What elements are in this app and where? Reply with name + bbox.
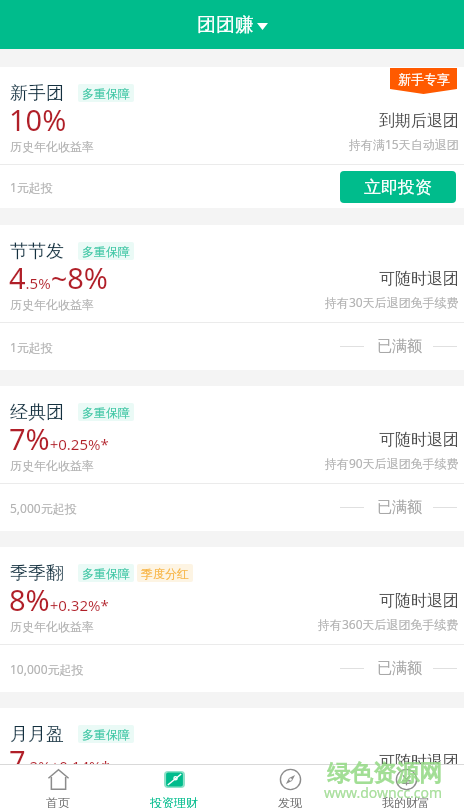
button[interactable]: 月月盈 xyxy=(0,708,464,764)
other: 投资理财 xyxy=(164,769,185,790)
staticText: 季季翻 xyxy=(10,562,64,585)
staticText: 已满额 xyxy=(377,498,422,517)
button[interactable]: 立即投资 xyxy=(340,171,456,203)
staticText: 可随时退团 xyxy=(379,269,459,289)
staticText: 7%+0.25%* xyxy=(9,419,109,458)
other: 我的财富 xyxy=(396,769,417,790)
staticText: 持有360天后退团免手续费 xyxy=(318,616,459,632)
staticText: 多重保障 xyxy=(82,566,130,581)
button[interactable]: 经典团 xyxy=(0,386,464,531)
button[interactable]: 我的财富 xyxy=(348,765,464,808)
staticText: 节节发 xyxy=(10,240,64,263)
staticText: 月月盈 xyxy=(10,723,64,746)
button[interactable]: 发现 xyxy=(232,765,348,808)
staticText: 绿色资源网 xyxy=(327,759,442,788)
staticText: 历史年化收益率 xyxy=(10,297,94,312)
staticText: 我的财富 xyxy=(382,795,430,808)
button[interactable]: 新手团 xyxy=(0,67,464,208)
staticText: 多重保障 xyxy=(82,727,130,742)
staticText: 4.5%~8% xyxy=(9,258,108,297)
button[interactable]: 节节发 xyxy=(0,225,464,370)
staticText: 新手专享 xyxy=(398,71,450,87)
staticText: 投资理财 xyxy=(150,795,198,808)
other: 首页 xyxy=(48,769,69,790)
staticText: 可随时退团 xyxy=(379,752,459,772)
staticText: 到期后退团 xyxy=(379,111,459,131)
staticText: 历史年化收益率 xyxy=(10,139,94,154)
staticText: 5,000元起投 xyxy=(10,500,77,516)
staticText: 已满额 xyxy=(377,659,422,678)
button[interactable]: 季季翻 xyxy=(0,547,464,692)
staticText: 历史年化收益率 xyxy=(10,780,94,795)
staticText: 发现 xyxy=(278,795,302,808)
staticText: 7.2%+0.14%* xyxy=(9,741,110,780)
staticText: 经典团 xyxy=(10,401,64,424)
staticText: 新手团 xyxy=(10,82,64,105)
button[interactable]: 首页 xyxy=(0,765,116,808)
staticText: 历史年化收益率 xyxy=(10,458,94,473)
staticText: 多重保障 xyxy=(82,86,130,101)
staticText: 持有90天后退团免手续费 xyxy=(325,455,459,471)
staticText: 立即投资 xyxy=(364,177,432,198)
other: 发现 xyxy=(280,769,301,790)
staticText: 8%+0.32%* xyxy=(9,580,109,619)
staticText: 10,000元起投 xyxy=(10,661,84,677)
staticText: 10% xyxy=(9,100,67,139)
button[interactable]: 投资理财 xyxy=(116,765,232,808)
staticText: 季度分红 xyxy=(141,566,189,581)
staticText: 已满额 xyxy=(377,337,422,356)
staticText: 首页 xyxy=(46,795,70,808)
staticText: 1元起投 xyxy=(10,339,53,355)
staticText: 团团赚 xyxy=(197,13,254,37)
staticText: 多重保障 xyxy=(82,244,130,259)
staticText: 持有30天后退团免手续费 xyxy=(325,294,459,310)
staticText: 可随时退团 xyxy=(379,591,459,611)
staticText: 可随时退团 xyxy=(379,430,459,450)
staticText: 持有满15天自动退团 xyxy=(349,136,459,152)
staticText: 持有180天后退团免手续费 xyxy=(318,777,459,793)
staticText: www.downcc.com xyxy=(324,783,443,802)
staticText: 多重保障 xyxy=(82,405,130,420)
staticText: 1元起投 xyxy=(10,179,53,195)
staticText: 历史年化收益率 xyxy=(10,619,94,634)
